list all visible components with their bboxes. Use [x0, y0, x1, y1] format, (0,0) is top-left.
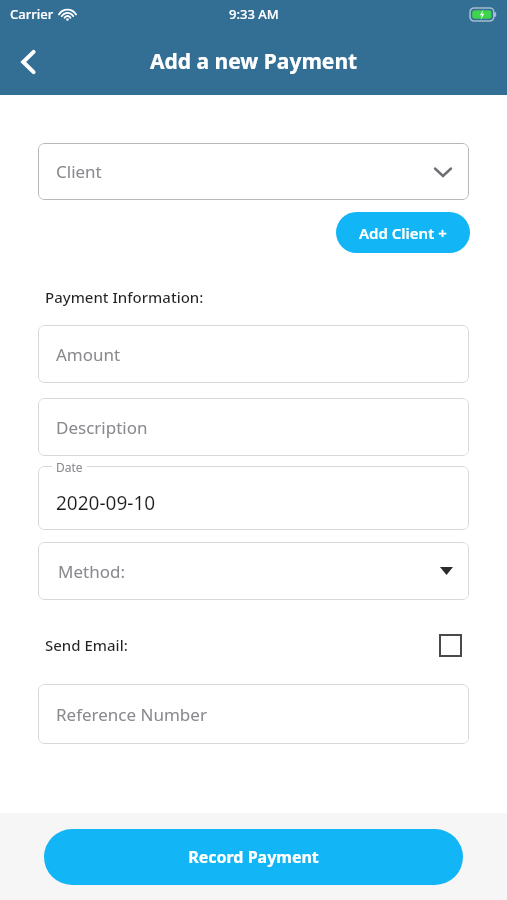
staticText: Method:: [58, 560, 125, 583]
button[interactable]: [38, 466, 469, 530]
staticText: Amount: [56, 343, 121, 366]
staticText: Carrier: [10, 5, 54, 23]
button[interactable]: Add Client +: [336, 212, 470, 253]
button[interactable]: Amount: [38, 325, 469, 383]
staticText: Send Email:: [45, 635, 128, 655]
button[interactable]: Back: [0, 34, 56, 90]
staticText: Payment Information:: [45, 287, 204, 307]
staticText: Add a new Payment: [150, 47, 358, 76]
staticText: Description: [56, 416, 148, 439]
staticText: Reference Number: [56, 703, 207, 726]
button[interactable]: Client: [38, 143, 469, 200]
staticText: Client: [56, 160, 102, 183]
button[interactable]: Send Email:: [45, 628, 462, 662]
staticText: Date: [56, 459, 83, 475]
other: Send Email checkbox: [439, 634, 462, 657]
button[interactable]: Record Payment: [44, 829, 463, 885]
staticText: 2020-09-10: [56, 490, 156, 516]
button[interactable]: Method:: [38, 542, 469, 600]
staticText: Record Payment: [188, 846, 319, 868]
staticText: 9:33 AM: [229, 5, 279, 23]
button[interactable]: Reference Number: [38, 684, 469, 744]
button[interactable]: Description: [38, 398, 469, 456]
staticText: Add Client +: [359, 223, 447, 243]
